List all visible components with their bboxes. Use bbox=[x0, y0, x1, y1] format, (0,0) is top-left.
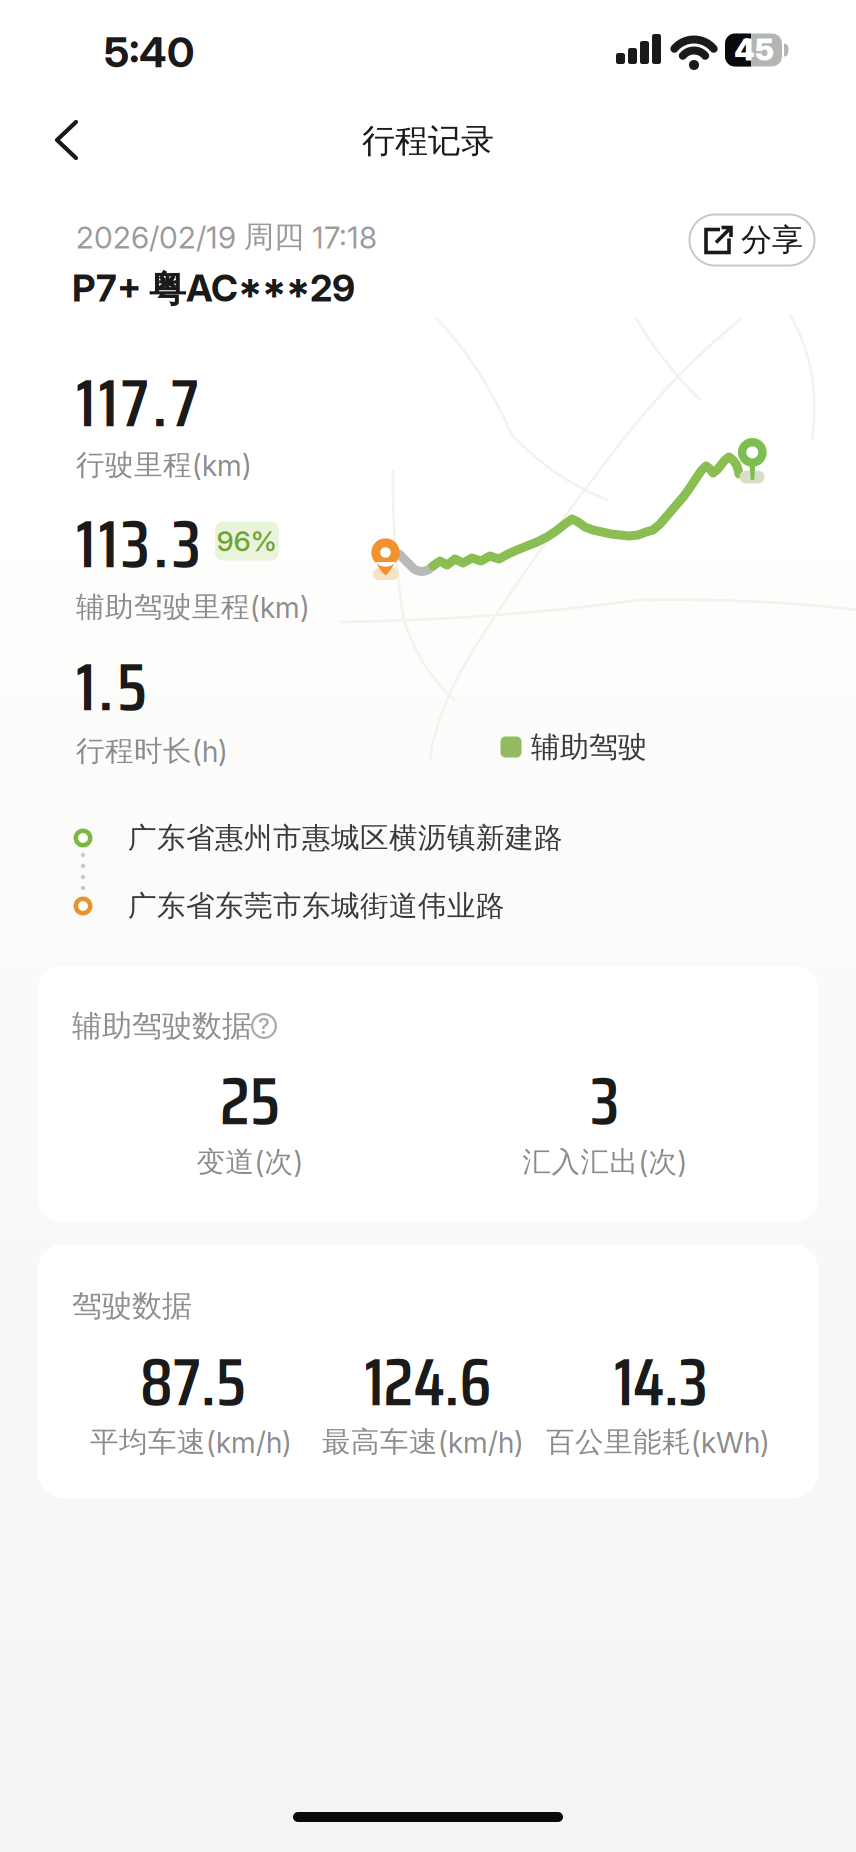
staticText: P7+ 粤AC***29 bbox=[72, 266, 355, 312]
button[interactable] bbox=[50, 118, 110, 162]
staticText: 1.5 bbox=[76, 634, 147, 740]
button[interactable]: 分享 bbox=[688, 213, 815, 266]
staticText: 行驶里程(km) bbox=[76, 447, 252, 483]
button[interactable]: ? bbox=[251, 1013, 277, 1039]
staticText: 45 bbox=[734, 31, 774, 68]
staticText: 117.7 bbox=[76, 350, 199, 456]
staticText: ? bbox=[258, 1013, 270, 1039]
staticText: 行程时长(h) bbox=[76, 733, 228, 769]
staticText: 最高车速(km/h) bbox=[322, 1424, 524, 1460]
staticText: 辅助驾驶数据 bbox=[72, 1007, 252, 1045]
staticText: 5:40 bbox=[104, 27, 194, 77]
staticText: 113.3 bbox=[76, 491, 201, 597]
staticText: 平均车速(km/h) bbox=[90, 1424, 292, 1460]
staticText: 百公里能耗(kWh) bbox=[546, 1424, 770, 1460]
staticText: 变道(次) bbox=[196, 1144, 303, 1180]
staticText: 25 bbox=[220, 1048, 280, 1154]
staticText: 辅助驾驶里程(km) bbox=[76, 589, 310, 625]
staticText: 汇入汇出(次) bbox=[522, 1144, 687, 1180]
staticText: 14.3 bbox=[614, 1329, 708, 1435]
staticText: 辅助驾驶 bbox=[531, 729, 647, 765]
staticText: 87.5 bbox=[140, 1329, 246, 1435]
staticText: 广东省东莞市东城街道伟业路 bbox=[128, 888, 505, 924]
staticText: 2026/02/19 周四 17:18 bbox=[76, 218, 377, 256]
staticText: 广东省惠州市惠城区横沥镇新建路 bbox=[128, 820, 563, 856]
staticText: 124.6 bbox=[364, 1329, 491, 1435]
staticText: 分享 bbox=[741, 220, 803, 260]
staticText: 行程记录 bbox=[362, 120, 494, 162]
staticText: 驾驶数据 bbox=[72, 1287, 192, 1325]
staticText: 3 bbox=[590, 1048, 619, 1154]
staticText: 96% bbox=[216, 524, 277, 558]
